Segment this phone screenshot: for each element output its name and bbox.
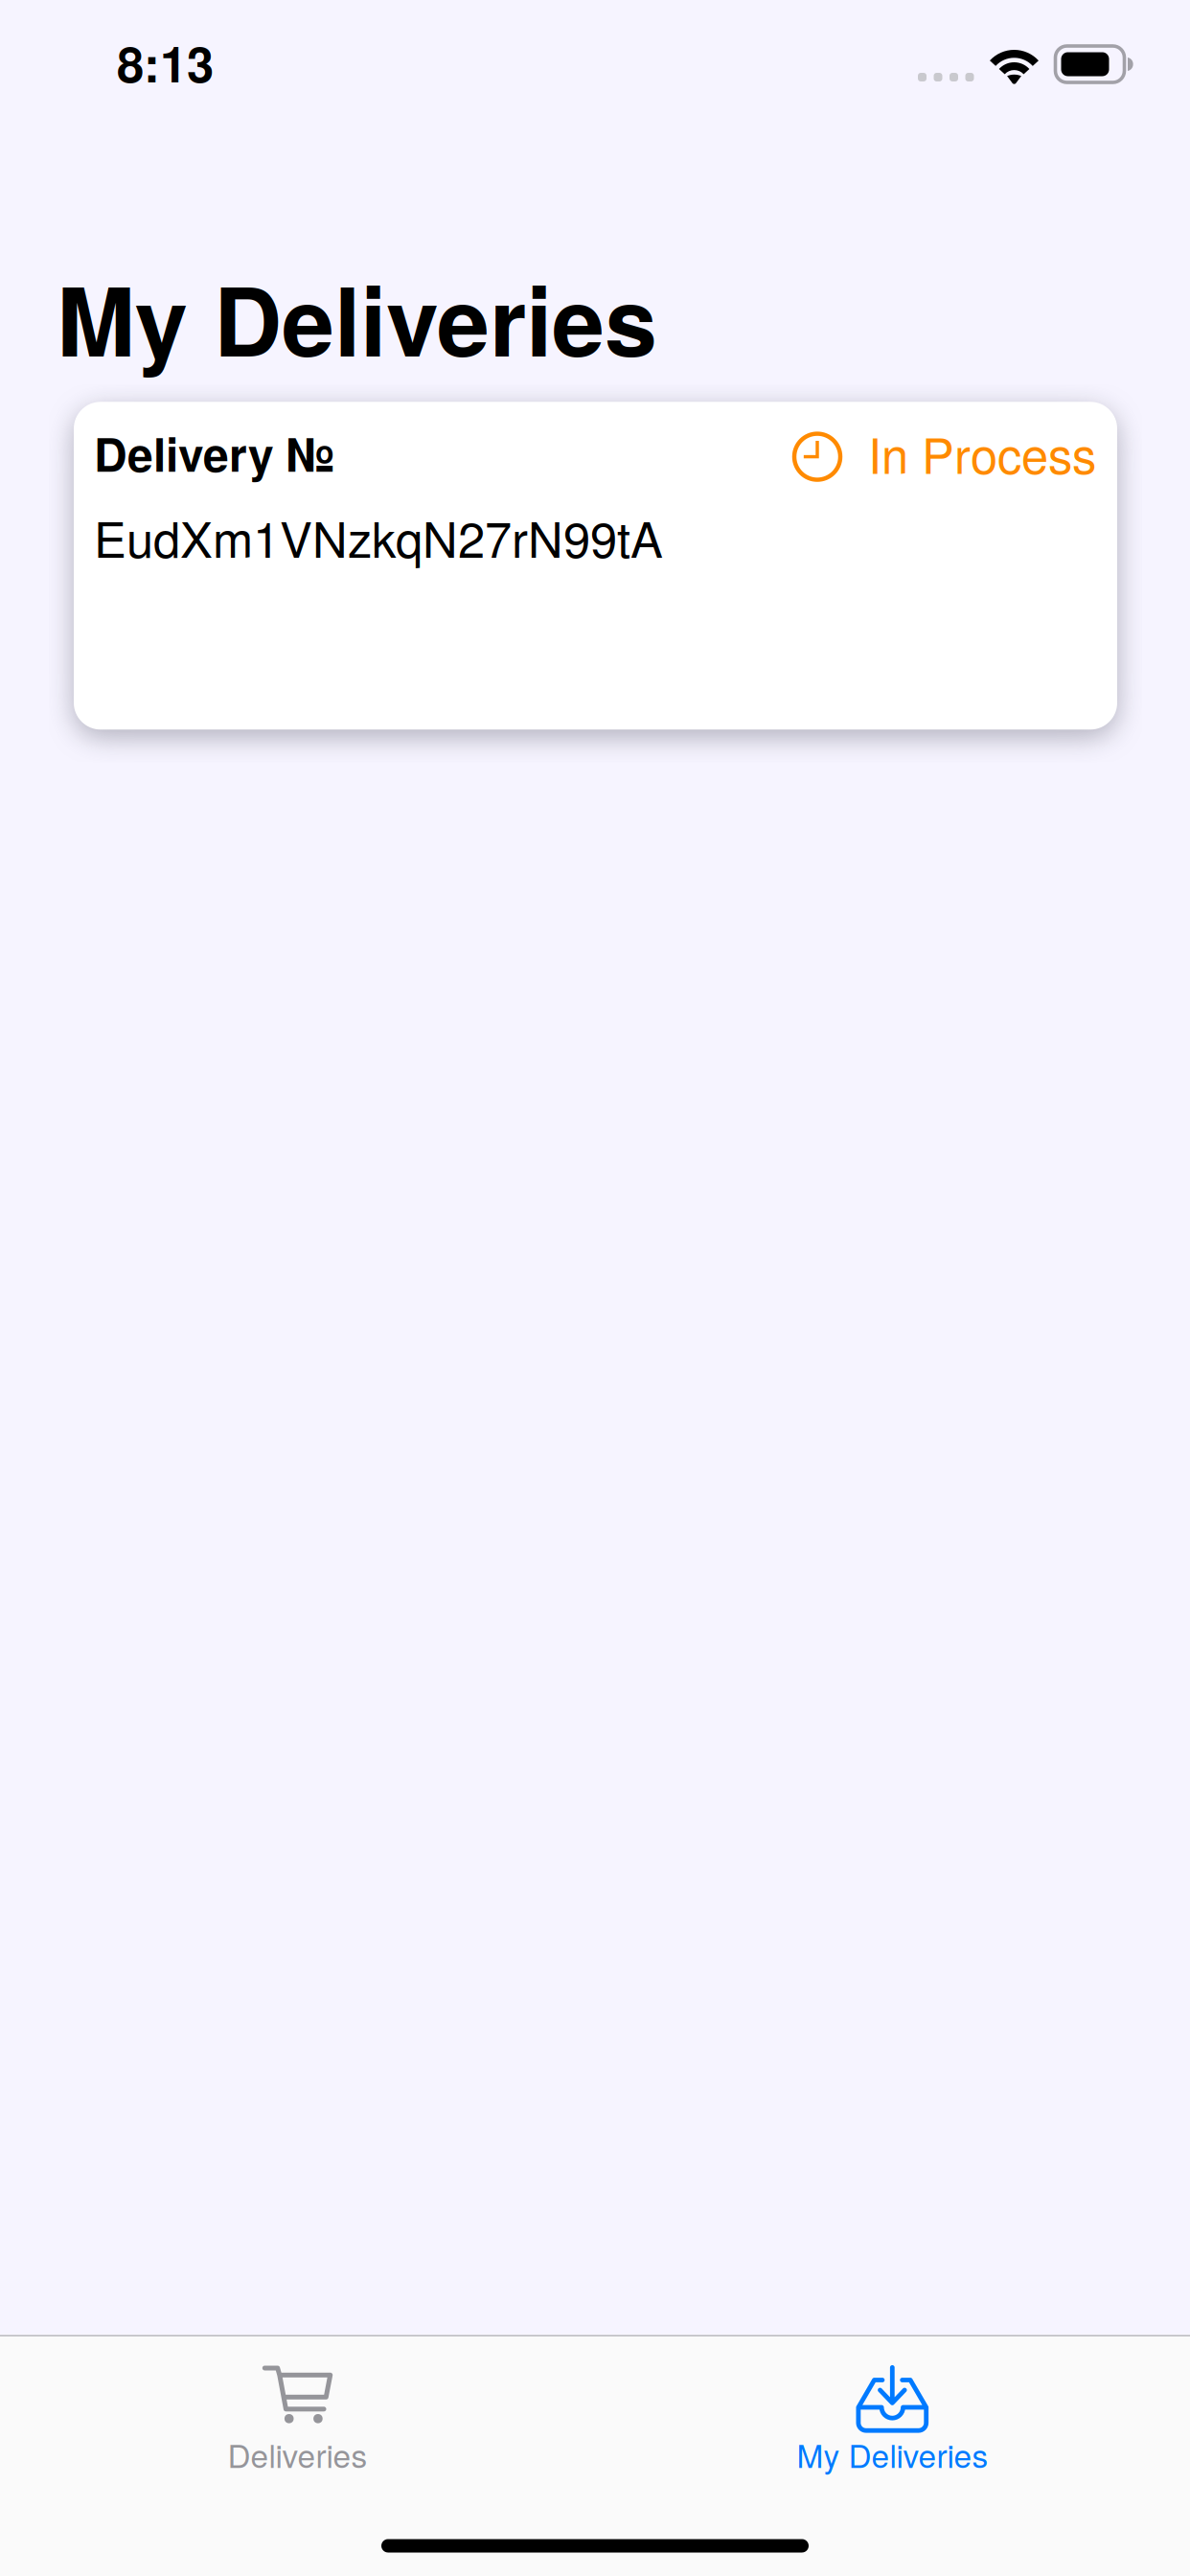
staticText: My Deliveries xyxy=(797,2431,988,2477)
staticText: In Process xyxy=(868,418,1096,488)
staticText: 8:13 xyxy=(117,28,214,97)
button[interactable]: My Deliveries xyxy=(595,2336,1190,2477)
staticText: Delivery № xyxy=(94,420,334,486)
button[interactable]: Delivery № xyxy=(74,402,1117,730)
staticText: Deliveries xyxy=(228,2431,367,2477)
button[interactable]: Deliveries xyxy=(0,2336,595,2477)
staticText: EudXm1VNzkqN27rN99tA xyxy=(94,502,663,572)
staticText: My Deliveries xyxy=(57,250,657,386)
